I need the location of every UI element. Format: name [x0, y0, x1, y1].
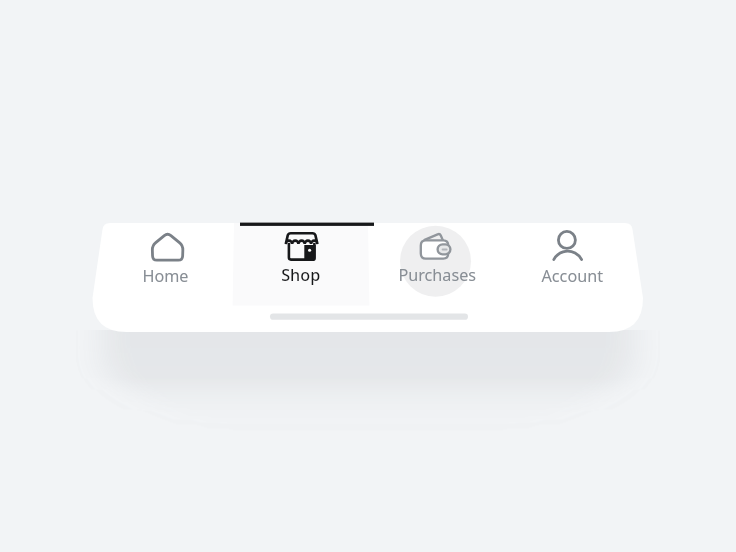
button[interactable]: Shop: [234, 223, 368, 332]
button[interactable]: Account: [502, 223, 632, 332]
button[interactable]: Home: [103, 223, 234, 332]
button[interactable]: Purchases: [368, 223, 502, 332]
